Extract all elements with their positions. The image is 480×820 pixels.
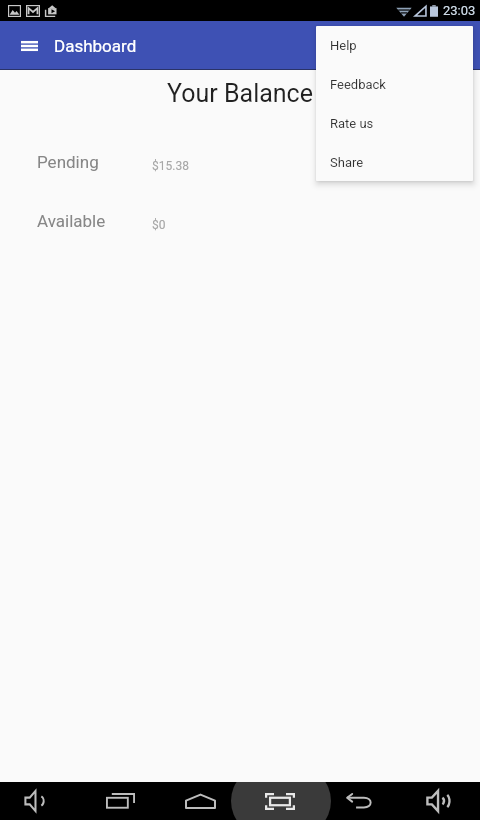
- staticText: $0: [152, 218, 166, 232]
- staticText: Help: [330, 38, 357, 53]
- button[interactable]: Volume up: [412, 782, 468, 820]
- button[interactable]: Pending: [0, 152, 480, 172]
- staticText: Feedback: [330, 77, 386, 92]
- staticText: Dashboard: [54, 36, 137, 56]
- button[interactable]: Feedback: [316, 65, 473, 104]
- button[interactable]: Share: [316, 143, 473, 181]
- button[interactable]: Home: [172, 782, 228, 820]
- staticText: Rate us: [330, 116, 374, 131]
- staticText: Available: [37, 211, 106, 231]
- button[interactable]: Back: [332, 782, 388, 820]
- staticText: Your Balance: [0, 79, 480, 108]
- button[interactable]: Help: [316, 26, 473, 65]
- button[interactable]: Rate us: [316, 104, 473, 143]
- button[interactable]: Screenshot: [252, 782, 308, 820]
- staticText: Pending: [37, 152, 99, 172]
- staticText: $15.38: [152, 159, 189, 173]
- staticText: Share: [330, 155, 364, 170]
- button[interactable]: Volume down: [7, 782, 63, 820]
- staticText: 23:03: [443, 3, 476, 18]
- button[interactable]: Available: [0, 211, 480, 231]
- button[interactable]: Recent apps: [92, 782, 148, 820]
- button[interactable]: Open navigation drawer: [9, 26, 49, 66]
